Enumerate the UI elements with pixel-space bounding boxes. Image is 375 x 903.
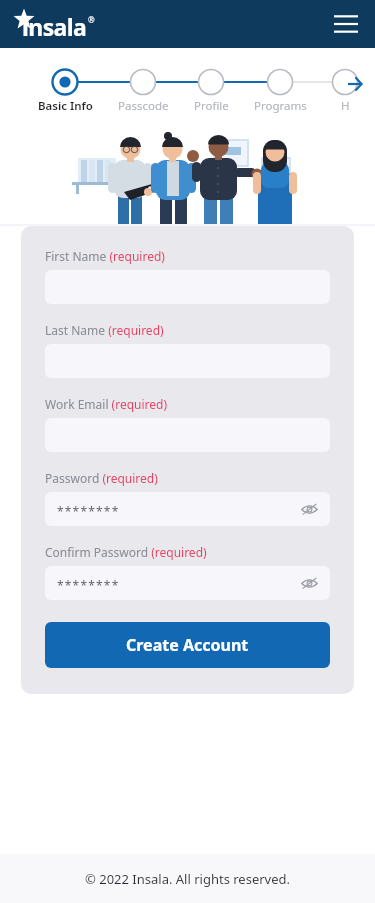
staticText: H [341, 98, 350, 114]
staticText: Basic Info [38, 98, 93, 114]
staticText: Last Name (required) [45, 322, 164, 338]
staticText: Profile [194, 98, 229, 114]
button[interactable]: H [303, 98, 375, 114]
button[interactable]: Profile [169, 98, 253, 114]
button[interactable]: Show password [296, 496, 322, 522]
button[interactable] [14, 10, 110, 38]
button[interactable]: ******** [45, 566, 330, 600]
button[interactable]: ******** [45, 492, 330, 526]
button[interactable]: Show password [296, 570, 322, 596]
button[interactable]: Create Account [45, 622, 330, 668]
button[interactable]: Menu [331, 9, 361, 39]
staticText: Programs [254, 98, 307, 114]
staticText: Passcode [118, 98, 169, 114]
staticText: Create Account [126, 634, 249, 656]
button[interactable]: Programs [238, 98, 322, 114]
staticText: insala [22, 11, 87, 42]
staticText: Work Email (required) [45, 396, 168, 412]
staticText: Password (required) [45, 470, 158, 486]
button[interactable]: Basic Info [23, 98, 107, 114]
staticText: Confirm Password (required) [45, 544, 207, 560]
staticText: ******** [57, 577, 120, 593]
staticText: ® [88, 14, 95, 25]
staticText: ******** [57, 503, 120, 519]
button[interactable]: Passcode [101, 98, 185, 114]
staticText: © 2022 Insala. All rights reserved. [85, 870, 291, 888]
staticText: First Name (required) [45, 248, 165, 264]
